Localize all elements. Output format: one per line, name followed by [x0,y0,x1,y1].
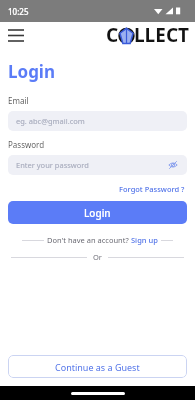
staticText: Login [8,60,56,83]
staticText: LLECT [134,22,190,48]
button[interactable]: Enter your password [8,155,187,175]
staticText: Enter your password [16,160,89,170]
staticText: eg. abc@gmail.com [16,116,85,126]
staticText: Forgot Password ? [119,184,185,194]
button[interactable]: Toggle password visibility [167,159,179,171]
button[interactable]: Sign up [131,235,158,245]
staticText: Don't have an account? [47,235,131,245]
staticText: Password [8,139,45,150]
button[interactable]: Login [8,201,187,224]
staticText: Email [8,95,29,106]
staticText: Sign up [131,235,158,245]
button[interactable]: eg. abc@gmail.com [8,111,187,131]
button[interactable]: Menu [4,23,28,47]
staticText: 10:25 [8,6,29,17]
staticText: Or [93,252,102,262]
button[interactable]: Continue as a Guest [8,355,187,378]
staticText: Continue as a Guest [55,361,140,373]
staticText: Login [84,206,111,220]
staticText: C [106,22,119,48]
button[interactable]: Forgot Password ? [117,182,187,196]
